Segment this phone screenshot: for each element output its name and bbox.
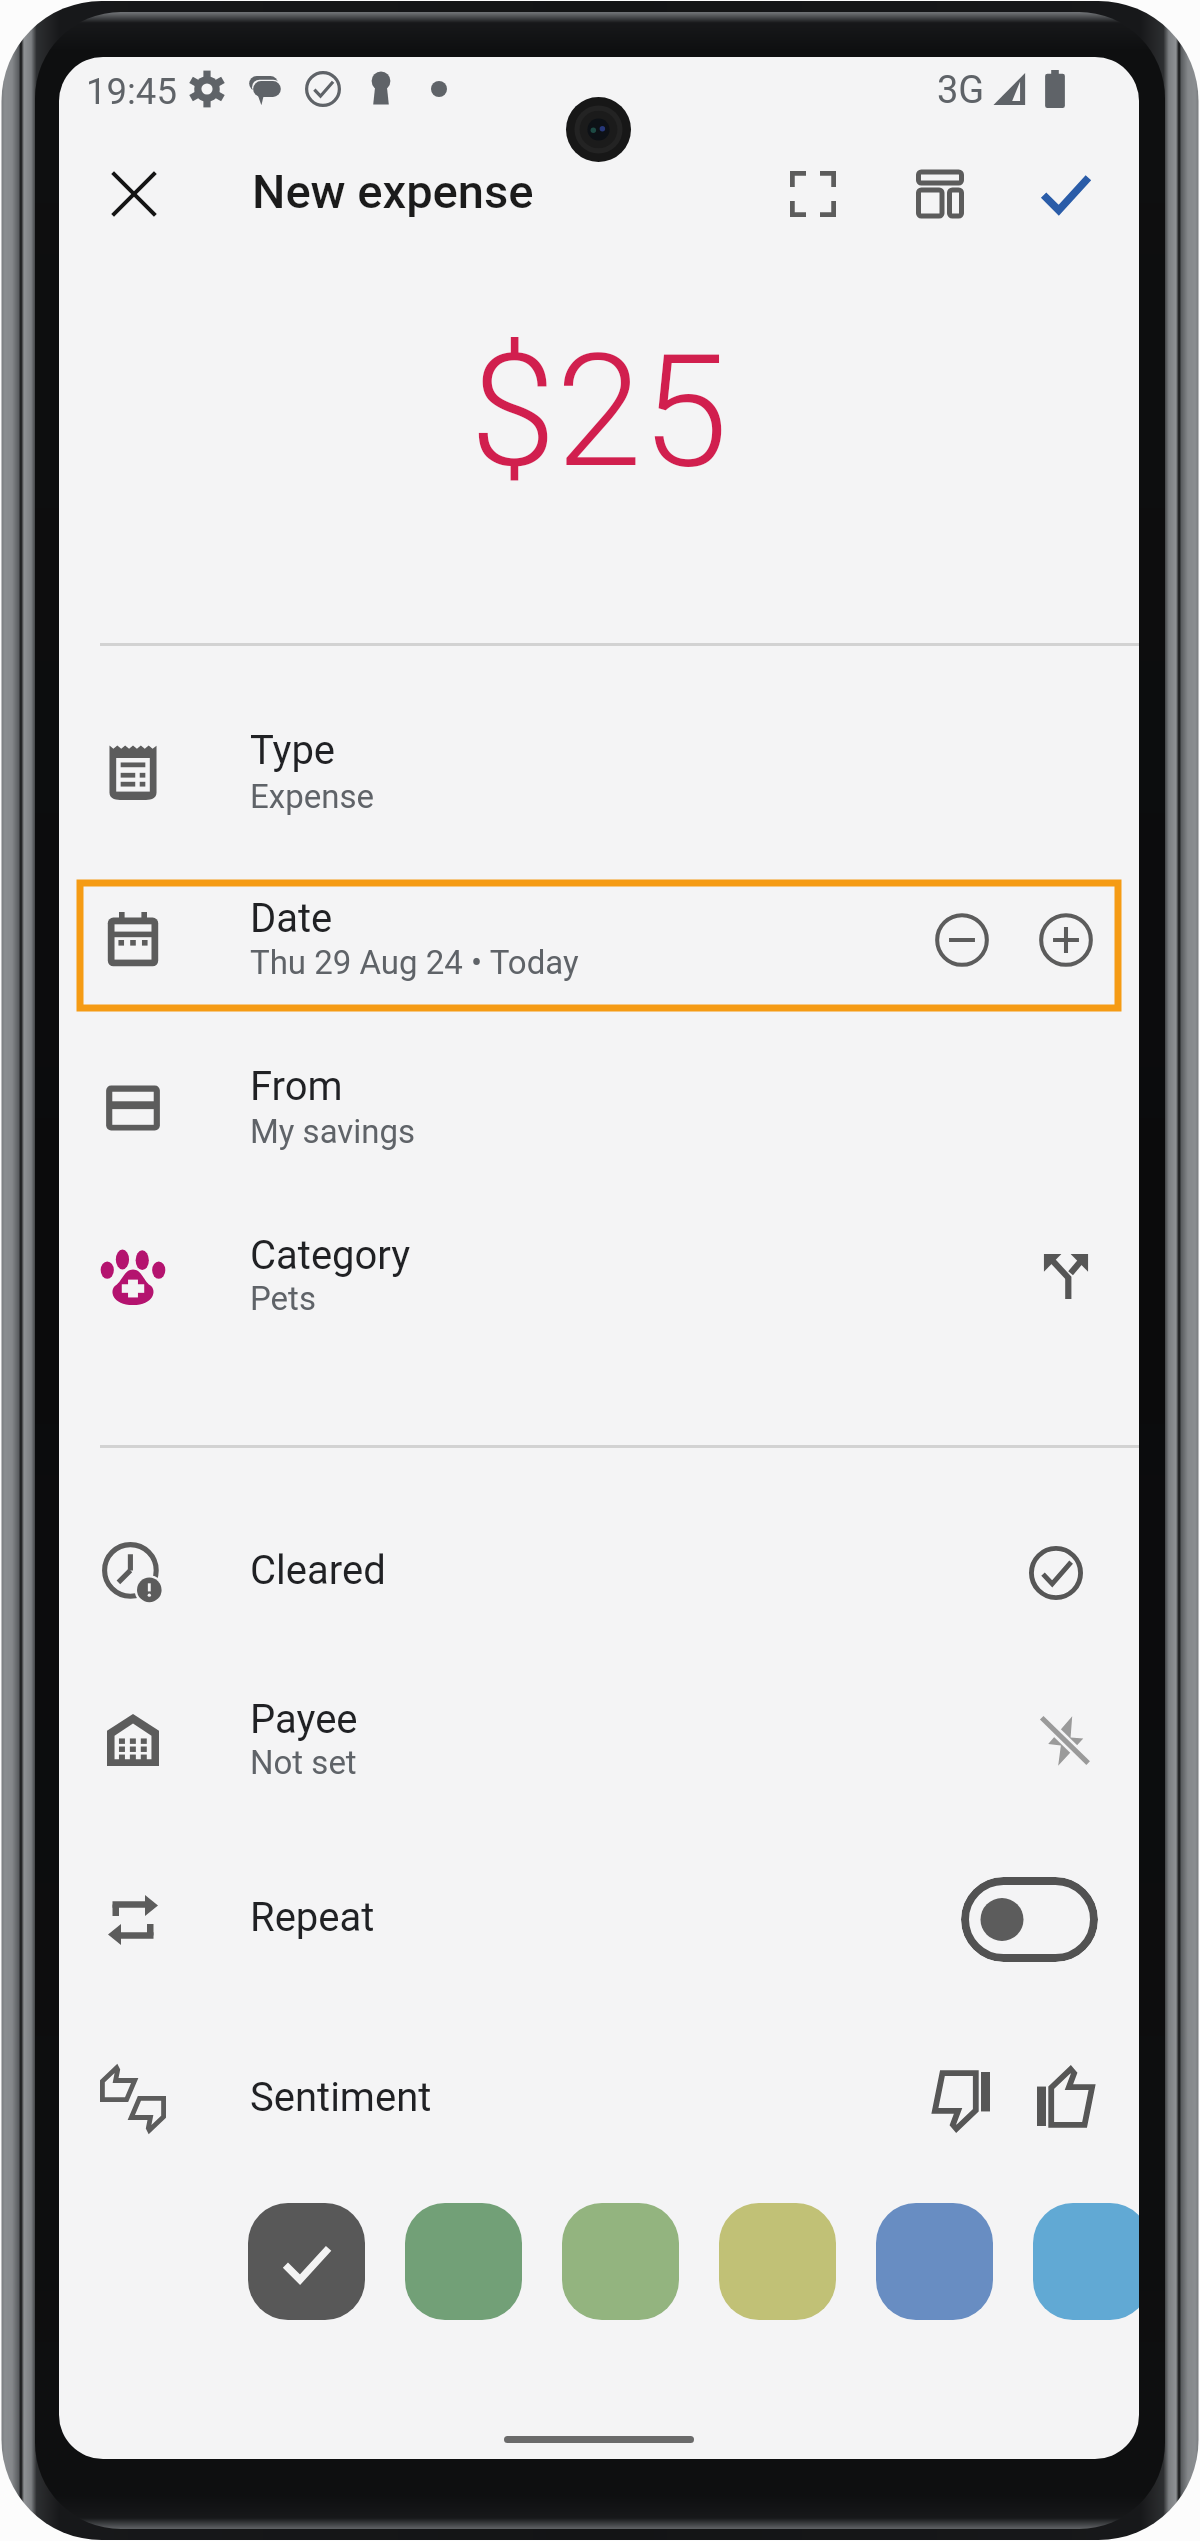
staticText: My savings [250, 1112, 416, 1151]
button[interactable] [59, 2015, 1139, 2175]
button[interactable]: $25 [59, 300, 1139, 500]
button[interactable]: Colour 5 [876, 2203, 993, 2320]
staticText: 19:45 [86, 70, 177, 113]
button[interactable]: Cleared [1006, 1523, 1106, 1623]
staticText: 3G [937, 68, 985, 113]
button[interactable] [59, 682, 1139, 856]
button[interactable]: Repeat toggle [961, 1877, 1098, 1962]
button[interactable]: Flash off [1016, 1691, 1116, 1791]
button[interactable]: Colour 3 [562, 2203, 679, 2320]
button[interactable]: Fullscreen [763, 144, 863, 244]
button[interactable]: Close [84, 144, 184, 244]
button[interactable]: Next day [1016, 890, 1116, 990]
button[interactable]: Save [1016, 144, 1116, 244]
staticText: Thu 29 Aug 24 • Today [250, 943, 579, 982]
staticText: Type [250, 727, 336, 774]
staticText: Expense [250, 777, 374, 816]
button[interactable]: Colour 6 [1033, 2203, 1139, 2320]
staticText: New expense [252, 164, 534, 219]
staticText: Pets [250, 1279, 316, 1318]
button[interactable]: Change category [1016, 1226, 1116, 1326]
button[interactable]: Colour 2 [405, 2203, 522, 2320]
button[interactable] [59, 1490, 1139, 1655]
staticText: Cleared [250, 1547, 386, 1594]
button[interactable]: Colour 1 [248, 2203, 365, 2320]
button[interactable] [59, 1835, 1139, 2005]
button[interactable]: Colour 4 [719, 2203, 836, 2320]
staticText: Category [250, 1232, 411, 1279]
staticText: Repeat [250, 1894, 375, 1941]
button[interactable]: Layout [890, 144, 990, 244]
staticText: Not set [250, 1743, 357, 1782]
button[interactable]: Thumbs down [906, 2046, 1016, 2156]
staticText: $25 [470, 321, 728, 503]
staticText: Date [250, 895, 333, 942]
button[interactable] [59, 1020, 1139, 1190]
button[interactable] [59, 1190, 1139, 1360]
button[interactable] [59, 1655, 1139, 1825]
button[interactable] [80, 883, 1118, 1008]
button[interactable]: Previous day [912, 890, 1012, 990]
staticText: Sentiment [250, 2074, 432, 2121]
staticText: From [250, 1063, 343, 1110]
button[interactable]: Thumbs up [1011, 2042, 1121, 2152]
staticText: Payee [250, 1696, 358, 1743]
